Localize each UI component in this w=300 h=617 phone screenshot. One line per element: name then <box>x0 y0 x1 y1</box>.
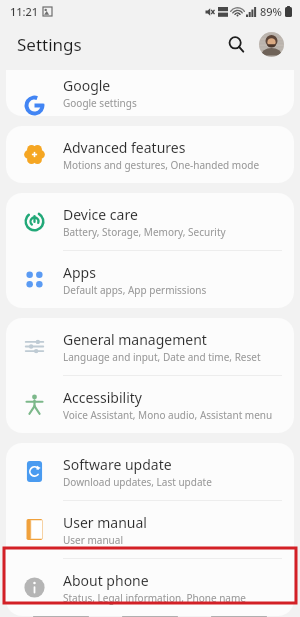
staticText: Software update <box>63 455 172 474</box>
staticText: General management <box>63 330 207 349</box>
staticText: Voice Assistant, Mono audio, Assistant m… <box>63 408 273 422</box>
button[interactable]: Software update <box>6 443 294 500</box>
staticText: Status, Legal information, Phone name <box>63 591 246 605</box>
staticText: Default apps, App permissions <box>63 283 207 297</box>
button[interactable]: Account <box>256 29 286 59</box>
button[interactable]: General management <box>6 318 294 375</box>
staticText: 11:21 <box>10 4 39 19</box>
staticText: Accessibility <box>63 388 142 407</box>
staticText: User manual <box>63 533 123 547</box>
button[interactable]: User manual <box>6 501 294 558</box>
button[interactable]: Device care <box>6 193 294 250</box>
staticText: Motions and gestures, One-handed mode <box>63 158 260 172</box>
button[interactable]: Accessibility <box>6 376 294 433</box>
staticText: 89% <box>260 4 282 19</box>
staticText: Advanced features <box>63 138 186 157</box>
button[interactable]: Apps <box>6 251 294 308</box>
button[interactable]: About phone <box>6 559 294 616</box>
staticText: Download updates, Last update <box>63 475 212 489</box>
button[interactable]: Search <box>218 26 254 62</box>
staticText: Apps <box>63 263 96 282</box>
button[interactable]: Google <box>6 70 294 116</box>
staticText: Device care <box>63 205 138 224</box>
staticText: Google settings <box>63 96 137 110</box>
staticText: User manual <box>63 513 147 532</box>
button[interactable]: Advanced features <box>6 126 294 183</box>
staticText: Battery, Storage, Memory, Security <box>63 225 226 239</box>
staticText: Language and input, Date and time, Reset <box>63 350 261 364</box>
staticText: Google <box>63 76 111 95</box>
staticText: Settings <box>17 33 82 56</box>
staticText: About phone <box>63 571 149 590</box>
